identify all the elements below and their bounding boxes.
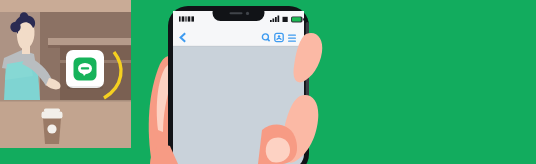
button[interactable]: Coffee shop illustration	[0, 0, 536, 164]
